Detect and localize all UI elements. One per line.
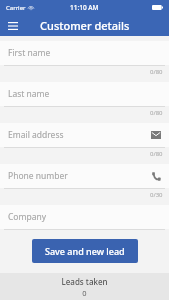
staticText: Last name (8, 88, 50, 100)
button[interactable]: Company (0, 205, 169, 229)
staticText: Leads taken (61, 276, 108, 287)
button[interactable]: Save and new lead (32, 239, 138, 263)
staticText: Company (8, 211, 47, 223)
staticText: 0/80 (150, 150, 163, 158)
button[interactable]: Menu (5, 18, 21, 34)
staticText: 0/80 (150, 109, 163, 117)
staticText: Carrier (6, 4, 26, 12)
staticText: Customer details (40, 18, 130, 33)
staticText: 0/80 (150, 68, 163, 76)
button[interactable]: Email address (0, 123, 169, 147)
staticText: First name (8, 47, 51, 59)
button[interactable]: First name (0, 41, 169, 65)
staticText: 0 (82, 288, 87, 298)
button[interactable]: Phone number (0, 164, 169, 188)
staticText: 11:10 AM (70, 3, 99, 12)
staticText: Save and new lead (45, 245, 125, 257)
staticText: 0/30 (150, 191, 163, 199)
staticText: Phone number (8, 170, 68, 182)
button[interactable]: Last name (0, 82, 169, 106)
staticText: Email address (8, 129, 64, 141)
button[interactable]: Leads taken (0, 273, 169, 300)
